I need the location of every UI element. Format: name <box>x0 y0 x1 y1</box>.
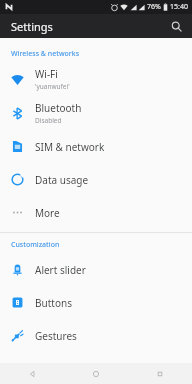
staticText: Data usage <box>35 173 89 187</box>
button[interactable]: Buttons <box>0 286 192 319</box>
button[interactable]: Gestures <box>0 319 192 352</box>
staticText: Gestures <box>35 329 77 343</box>
staticText: 15:40 <box>170 2 188 12</box>
staticText: Buttons <box>35 296 72 310</box>
staticText: More <box>35 206 60 220</box>
staticText: 'yuanwufei' <box>35 82 70 91</box>
staticText: SIM & network <box>35 140 105 154</box>
button[interactable]: Home <box>64 363 128 384</box>
button[interactable]: Recent apps <box>128 363 192 384</box>
button[interactable]: Back <box>0 363 64 384</box>
button[interactable]: Search settings <box>166 16 186 36</box>
staticText: Wi-Fi <box>35 67 58 81</box>
staticText: Wireless & networks <box>11 49 80 59</box>
staticText: Customization <box>11 240 60 250</box>
button[interactable]: SIM & network <box>0 130 192 163</box>
staticText: Settings <box>11 19 53 34</box>
staticText: 76% <box>147 2 161 12</box>
button[interactable]: Wi-Fi <box>0 62 192 96</box>
button[interactable]: Bluetooth <box>0 96 192 130</box>
button[interactable]: More <box>0 196 192 229</box>
staticText: Bluetooth <box>35 101 82 115</box>
button[interactable]: Alert slider <box>0 253 192 286</box>
staticText: Alert slider <box>35 263 86 277</box>
button[interactable]: Data usage <box>0 163 192 196</box>
staticText: Disabled <box>35 116 62 125</box>
